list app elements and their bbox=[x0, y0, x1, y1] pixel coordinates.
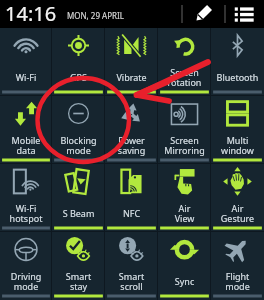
staticText: Smart stay bbox=[52, 270, 105, 293]
staticText: Driving mode bbox=[0, 270, 52, 293]
staticText: Flight mode bbox=[211, 270, 264, 293]
staticText: Blocking mode bbox=[52, 134, 105, 157]
button[interactable]: Blocking mode bbox=[52, 96, 105, 164]
button[interactable]: Air Gesture bbox=[211, 164, 264, 232]
button[interactable]: Bluetooth bbox=[211, 28, 264, 96]
button[interactable]: Driving mode bbox=[0, 232, 52, 300]
button[interactable]: Smart stay bbox=[52, 232, 105, 300]
staticText: Screen rotation bbox=[158, 66, 211, 89]
button[interactable]: Multi window bbox=[211, 96, 264, 164]
button[interactable]: NFC bbox=[105, 164, 158, 232]
staticText: Screen Mirroring bbox=[158, 134, 211, 157]
staticText: Sync bbox=[158, 275, 211, 287]
button[interactable]: Screen Mirroring bbox=[158, 96, 211, 164]
button[interactable]: S Beam bbox=[52, 164, 105, 232]
button[interactable]: Sync bbox=[158, 232, 211, 300]
staticText: MON, 29 APRIL bbox=[67, 10, 124, 21]
staticText: NFC bbox=[105, 207, 158, 219]
staticText: Wi-Fi hotspot bbox=[0, 202, 52, 225]
button[interactable]: Flight mode bbox=[211, 232, 264, 300]
button[interactable]: Mobile data bbox=[0, 96, 52, 164]
staticText: GPS bbox=[52, 71, 105, 83]
staticText: Wi-Fi bbox=[0, 71, 52, 83]
button[interactable]: Edit quick settings bbox=[192, 3, 214, 25]
staticText: Bluetooth bbox=[211, 71, 264, 83]
button[interactable]: Wi-Fi hotspot bbox=[0, 164, 52, 232]
staticText: Air Gesture bbox=[211, 202, 264, 225]
staticText: Air View bbox=[158, 202, 211, 225]
button[interactable]: Vibrate bbox=[105, 28, 158, 96]
button[interactable]: Notifications list bbox=[233, 3, 255, 25]
staticText: 14:16 bbox=[5, 0, 57, 27]
staticText: S Beam bbox=[52, 207, 105, 219]
staticText: Vibrate bbox=[105, 71, 158, 83]
staticText: Smart scroll bbox=[105, 270, 158, 293]
staticText: Power saving bbox=[105, 134, 158, 157]
staticText: Multi window bbox=[211, 134, 264, 157]
button[interactable]: Wi-Fi bbox=[0, 28, 52, 96]
button[interactable]: Power saving bbox=[105, 96, 158, 164]
button[interactable]: Air View bbox=[158, 164, 211, 232]
staticText: Mobile data bbox=[0, 134, 52, 157]
button[interactable]: Screen rotation bbox=[158, 28, 211, 96]
button[interactable]: GPS bbox=[52, 28, 105, 96]
button[interactable]: Smart scroll bbox=[105, 232, 158, 300]
